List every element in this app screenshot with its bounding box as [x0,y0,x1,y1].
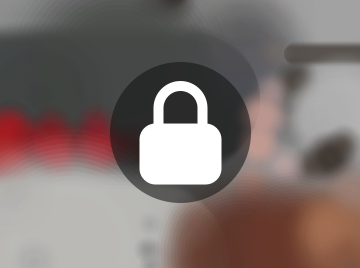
button[interactable]: Content locked [110,62,251,203]
